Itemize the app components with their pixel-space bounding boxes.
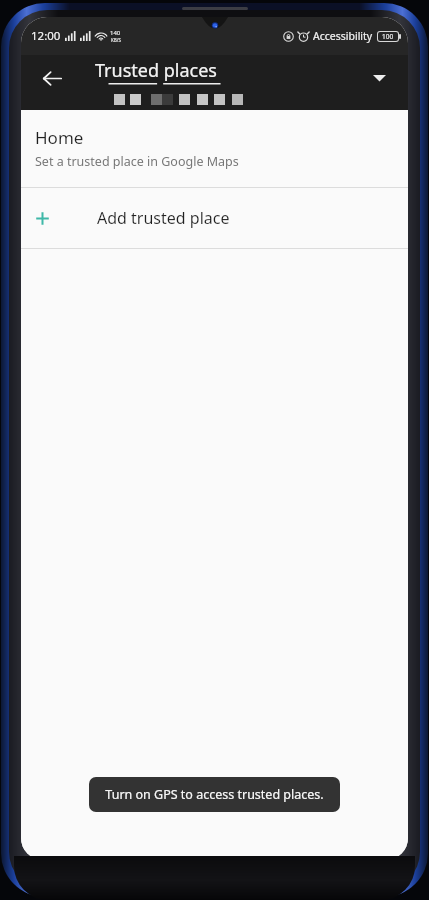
- staticText: Trusted places: [95, 58, 217, 83]
- staticText: Home: [35, 126, 84, 149]
- staticText: Turn on GPS to access trusted places.: [105, 786, 324, 803]
- staticText: 12:00: [31, 28, 61, 44]
- button[interactable]: Add trusted place: [21, 188, 408, 248]
- staticText: 140: [110, 29, 121, 37]
- button[interactable]: More options: [362, 61, 396, 95]
- staticText: 100: [382, 32, 394, 41]
- staticText: Set a trusted place in Google Maps: [35, 153, 239, 170]
- staticText: Add trusted place: [97, 207, 230, 229]
- button[interactable]: Home: [21, 110, 408, 187]
- staticText: Accessibility: [313, 29, 373, 43]
- staticText: KB/S: [111, 37, 121, 43]
- button[interactable]: Back: [33, 59, 71, 97]
